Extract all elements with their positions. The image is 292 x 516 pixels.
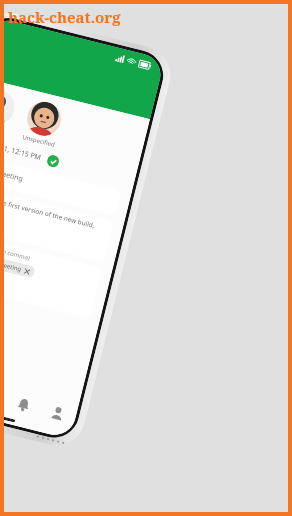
button[interactable]: Discussed the first version of the new b…: [0, 183, 114, 262]
staticText: Project Meeting: [0, 162, 24, 184]
button[interactable]: Unspecified: [23, 98, 65, 139]
staticText: Discussed the first version of the new b…: [0, 189, 107, 250]
button[interactable]: Profile: [42, 397, 73, 428]
staticText: hack-cheat.org: [8, 7, 121, 27]
button[interactable]: #Meeting: [0, 256, 36, 279]
staticText: Unspecified: [21, 133, 56, 149]
button[interactable]: Add: [0, 380, 5, 411]
staticText: 10/14/2021, 12:15 PM: [0, 136, 43, 163]
staticText: Tags (separate with comma): [0, 235, 31, 262]
button[interactable]: Verified: [46, 154, 60, 168]
button[interactable]: Project Meeting: [0, 152, 122, 216]
staticText: #Meeting: [0, 259, 23, 274]
button[interactable]: Tags (separate with comma): [0, 230, 103, 319]
button[interactable]: Notifications: [8, 388, 39, 420]
button[interactable]: Rob: [0, 86, 18, 128]
